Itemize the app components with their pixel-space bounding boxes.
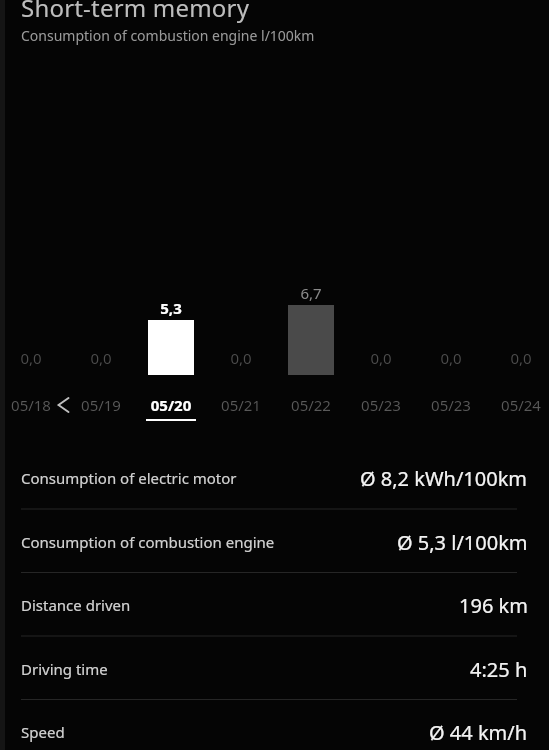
button[interactable]: 05/21: [206, 392, 276, 426]
staticText: 05/23: [346, 395, 416, 415]
button[interactable]: Previous days: [48, 390, 78, 420]
button[interactable]: Consumption of electric motor: [0, 446, 549, 510]
staticText: 05/18: [0, 395, 66, 415]
button[interactable]: 05/20: [136, 392, 206, 426]
staticText: 0,0: [61, 348, 141, 368]
button[interactable]: 05/22: [276, 392, 346, 426]
staticText: Ø 5,3 l/100km: [397, 529, 528, 556]
staticText: 05/21: [206, 395, 276, 415]
staticText: 0,0: [0, 348, 71, 368]
button[interactable]: Consumption of combustion engine: [0, 510, 549, 574]
button[interactable]: 05/23: [416, 392, 486, 426]
staticText: Speed: [21, 722, 65, 742]
staticText: 05/19: [66, 395, 136, 415]
staticText: Short-term memory: [21, 0, 250, 24]
button[interactable]: Distance driven: [0, 573, 549, 637]
staticText: 6,7: [271, 283, 351, 303]
staticText: 196 km: [459, 592, 528, 619]
button[interactable]: 05/23: [346, 392, 416, 426]
staticText: 05/22: [276, 395, 346, 415]
staticText: 05/23: [416, 395, 486, 415]
staticText: Consumption of combustion engine: [21, 532, 275, 552]
staticText: Consumption of electric motor: [21, 468, 237, 488]
staticText: Ø 8,2 kWh/100km: [360, 465, 528, 492]
staticText: 5,3: [131, 298, 211, 318]
staticText: 0,0: [481, 348, 549, 368]
staticText: Distance driven: [21, 595, 131, 615]
button[interactable]: Driving time: [0, 637, 549, 701]
button[interactable]: 05/18: [0, 392, 66, 426]
button[interactable]: 05/19: [66, 392, 136, 426]
staticText: Consumption of combustion engine l/100km: [21, 26, 315, 45]
staticText: 0,0: [341, 348, 421, 368]
staticText: 05/20: [136, 395, 206, 415]
staticText: 05/24: [486, 395, 549, 415]
button[interactable]: Speed: [0, 700, 549, 750]
staticText: Ø 44 km/h: [429, 719, 528, 746]
button[interactable]: 05/24: [486, 392, 549, 426]
staticText: 0,0: [201, 348, 281, 368]
staticText: Driving time: [21, 659, 108, 679]
staticText: 0,0: [411, 348, 491, 368]
staticText: 4:25 h: [470, 656, 528, 683]
